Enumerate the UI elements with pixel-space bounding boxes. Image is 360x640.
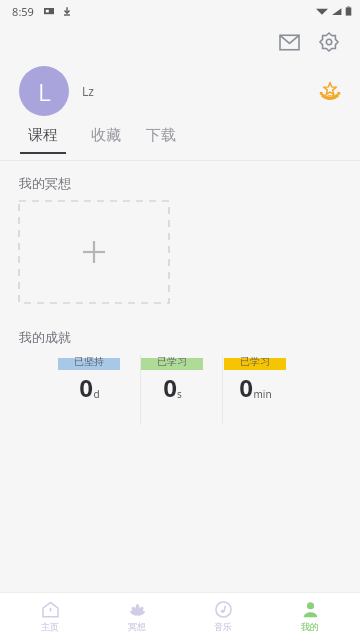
staticText: 已坚持 xyxy=(74,355,104,368)
staticText: 主页 xyxy=(41,621,59,632)
staticText: 0 xyxy=(239,371,253,404)
staticText: 0 xyxy=(163,371,177,404)
button[interactable]: 音乐 xyxy=(187,593,259,640)
button[interactable]: Add meditation xyxy=(19,201,169,303)
staticText: 8:59 xyxy=(12,4,34,19)
button[interactable]: 已坚持 xyxy=(58,355,120,404)
staticText: 0 xyxy=(79,371,93,404)
staticText: 我的成就 xyxy=(19,329,71,345)
staticText: 我的冥想 xyxy=(19,175,71,191)
button[interactable]: Settings xyxy=(312,25,346,59)
staticText: d xyxy=(93,387,100,401)
button[interactable]: Messages xyxy=(272,25,306,59)
staticText: L xyxy=(38,75,51,108)
staticText: Lz xyxy=(82,83,94,99)
staticText: 已学习 xyxy=(240,355,270,368)
button[interactable]: 冥想 xyxy=(101,593,173,640)
staticText: 我的 xyxy=(301,621,319,632)
button[interactable]: 已学习 xyxy=(141,355,203,404)
staticText: 音乐 xyxy=(214,621,232,632)
staticText: VIP xyxy=(325,93,335,101)
staticText: 已学习 xyxy=(157,355,187,368)
button[interactable]: L xyxy=(19,66,69,116)
button[interactable]: VIP badge xyxy=(312,73,348,109)
staticText: 课程 xyxy=(28,126,58,145)
staticText: 冥想 xyxy=(128,621,146,632)
staticText: s xyxy=(177,387,182,401)
button[interactable]: 主页 xyxy=(14,593,86,640)
button[interactable]: 已学习 xyxy=(224,355,286,404)
staticText: min xyxy=(253,387,272,401)
staticText: 收藏 xyxy=(91,126,121,145)
button[interactable]: 下载 xyxy=(144,126,178,154)
button[interactable]: 我的 xyxy=(274,593,346,640)
button[interactable]: 收藏 xyxy=(89,126,123,154)
button[interactable]: 课程 xyxy=(18,126,68,154)
staticText: 下载 xyxy=(146,126,176,145)
